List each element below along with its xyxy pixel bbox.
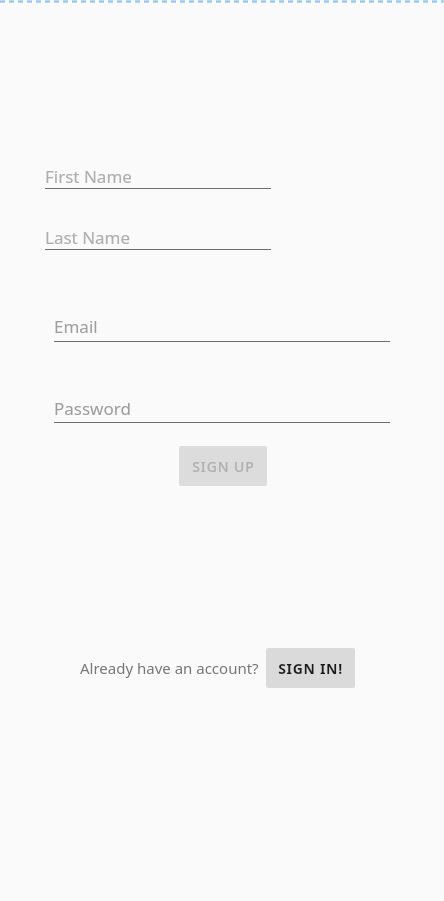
button[interactable]: Email (54, 315, 390, 347)
staticText: Already have an account? (80, 658, 259, 678)
button[interactable]: Password (54, 397, 390, 428)
button[interactable]: Already have an account? (80, 648, 259, 688)
button[interactable]: First Name (45, 165, 271, 194)
staticText: SIGN UP (192, 457, 255, 476)
staticText: Password (54, 397, 131, 420)
staticText: Email (54, 315, 98, 338)
button[interactable]: Last Name (45, 226, 271, 255)
button[interactable]: SIGN IN! (266, 648, 355, 688)
staticText: SIGN IN! (278, 659, 343, 678)
staticText: First Name (45, 165, 132, 188)
staticText: Last Name (45, 226, 131, 249)
button[interactable]: SIGN UP (179, 446, 267, 486)
